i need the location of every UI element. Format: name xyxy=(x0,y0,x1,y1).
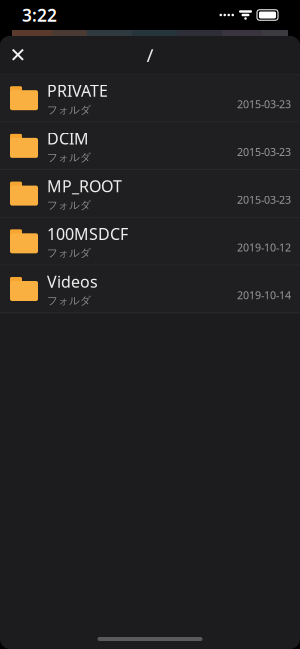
button[interactable]: DCIM xyxy=(0,122,300,170)
staticText: フォルダ xyxy=(47,103,91,116)
staticText: 2015-03-23 xyxy=(237,97,291,111)
staticText: フォルダ xyxy=(47,151,91,164)
staticText: 100MSDCF xyxy=(47,223,128,244)
button[interactable]: 100MSDCF xyxy=(0,218,300,265)
staticText: 2019-10-14 xyxy=(237,288,291,302)
button[interactable]: MP_ROOT xyxy=(0,170,300,218)
staticText: ✕ xyxy=(9,44,26,66)
staticText: 2019-10-12 xyxy=(237,240,291,254)
staticText: フォルダ xyxy=(47,294,91,307)
button[interactable]: Videos xyxy=(0,265,300,313)
staticText: 3:22 xyxy=(22,3,57,26)
button[interactable]: Close xyxy=(0,37,36,73)
staticText: 2015-03-23 xyxy=(237,145,291,159)
staticText: PRIVATE xyxy=(47,80,108,101)
staticText: フォルダ xyxy=(47,199,91,212)
button[interactable]: PRIVATE xyxy=(0,75,300,122)
staticText: Videos xyxy=(47,271,98,292)
staticText: / xyxy=(146,43,153,67)
staticText: DCIM xyxy=(47,128,89,149)
staticText: フォルダ xyxy=(47,246,91,259)
staticText: MP_ROOT xyxy=(47,175,122,197)
staticText: 2015-03-23 xyxy=(237,192,291,207)
